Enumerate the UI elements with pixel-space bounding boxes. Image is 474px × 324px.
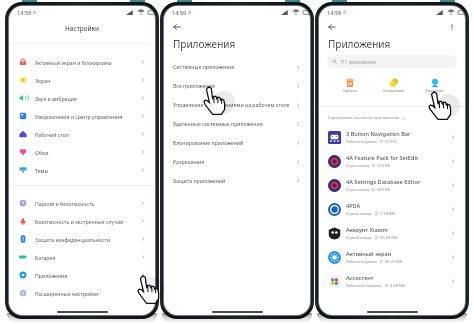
staticText: Активный экран и блокировка: [35, 59, 112, 66]
button[interactable]: 111 приложения: [327, 55, 457, 68]
staticText: Защита приложений: [173, 177, 226, 184]
staticText: Разрешения: [173, 158, 205, 165]
staticText: 3 дня назад: [346, 187, 369, 192]
button[interactable]: Разрешения: [416, 78, 453, 93]
button[interactable]: Управление приложениями на рабочем столе: [164, 95, 310, 114]
button[interactable]: Удаленные системные приложения: [164, 114, 310, 133]
staticText: Обои: [35, 149, 49, 156]
button[interactable]: 3 Button Navigation Bar: [319, 125, 465, 149]
staticText: Звук и вибрация: [35, 95, 77, 102]
button[interactable]: Безопасность и экстренные случаи: [9, 212, 155, 230]
staticText: Клонирование приложений: [173, 139, 244, 146]
staticText: Клонирование: [372, 89, 416, 93]
staticText: 55,00 МБ: [380, 235, 398, 240]
staticText: Темы: [35, 167, 49, 174]
staticText: Активный экран: [346, 250, 392, 258]
staticText: Защита конфиденциальности: [35, 236, 111, 243]
button[interactable]: Батарея: [9, 248, 155, 266]
staticText: Все приложения: [173, 82, 215, 89]
staticText: 111 приложения: [340, 59, 376, 65]
staticText: Работало давно: [346, 259, 377, 264]
staticText: Батарея: [35, 254, 56, 261]
staticText: 5 дней назад: [346, 235, 372, 240]
button[interactable]: Все приложения: [164, 76, 310, 95]
staticText: 4PDA: [346, 202, 361, 210]
staticText: 3 дня назад: [346, 163, 369, 168]
staticText: 14:59: [17, 9, 32, 17]
button[interactable]: Приложения: [9, 266, 155, 284]
staticText: 374 КБ: [377, 163, 390, 168]
staticText: 14:59: [327, 9, 342, 17]
staticText: Управление приложениями на рабочем столе: [173, 101, 290, 108]
button[interactable]: 4PDA: [319, 197, 465, 221]
staticText: Уведомления и Центр управления: [35, 113, 123, 120]
staticText: 4.38 МБ: [390, 283, 406, 288]
button[interactable]: Удаление: [328, 78, 372, 93]
button[interactable]: Обои: [9, 143, 155, 161]
button[interactable]: Расширенные настройки: [9, 284, 155, 302]
button[interactable]: Клонирование приложений: [164, 133, 310, 152]
staticText: Удаленные системные приложения: [173, 120, 263, 127]
button[interactable]: Клонирование: [372, 78, 416, 93]
staticText: 5 дней назад: [346, 211, 372, 216]
staticText: Удаление: [328, 89, 372, 93]
button[interactable]: Системные приложения: [164, 57, 310, 76]
button[interactable]: More options: [448, 23, 456, 31]
button[interactable]: Темы: [9, 161, 155, 179]
button[interactable]: 4A Settings Database Editor: [319, 173, 465, 197]
staticText: 3 Button Navigation Bar: [346, 130, 411, 138]
staticText: Безопасность и экстренные случаи: [35, 218, 124, 225]
button[interactable]: Защита приложений: [164, 171, 310, 190]
button[interactable]: Активный экран: [319, 245, 465, 269]
button[interactable]: Аккаунт Xiaomi: [319, 221, 465, 245]
button[interactable]: Ассистент: [319, 269, 465, 293]
button[interactable]: Уведомления и Центр управления: [9, 107, 155, 125]
button[interactable]: 4A Feature Pack for SetEdit: [319, 149, 465, 173]
button[interactable]: Рабочий стол: [9, 125, 155, 143]
staticText: Настройки: [65, 24, 100, 33]
staticText: 7.78 МБ: [380, 211, 396, 216]
staticText: Приложения: [35, 272, 68, 279]
staticText: 14:59: [172, 9, 187, 17]
staticText: Пароли и безопасность: [35, 200, 95, 207]
staticText: 4A Settings Database Editor: [346, 178, 421, 186]
staticText: Работало недавно: [346, 283, 382, 288]
button[interactable]: Звук и вибрация: [9, 89, 155, 107]
staticText: Экран: [35, 77, 51, 84]
button[interactable]: Back: [173, 23, 181, 31]
staticText: Рабочий стол: [35, 131, 69, 138]
staticText: 45.21 МБ: [385, 259, 403, 264]
staticText: Приложения: [328, 37, 391, 51]
staticText: Работало давно: [346, 139, 377, 144]
staticText: Приложения: [173, 37, 236, 51]
staticText: Расширенные настройки: [35, 290, 99, 297]
staticText: Системные приложения: [173, 63, 235, 70]
staticText: 4A Feature Pack for SetEdit: [346, 154, 419, 162]
button[interactable]: Защита конфиденциальности: [9, 230, 155, 248]
staticText: Разрешения: [416, 89, 453, 93]
button[interactable]: Экран: [9, 71, 155, 89]
staticText: Ассистент: [346, 274, 374, 282]
button[interactable]: Активный экран и блокировка: [9, 53, 155, 71]
staticText: 0.00 Б: [385, 139, 397, 144]
staticText: 493 КБ: [377, 187, 390, 192]
button[interactable]: Пароли и безопасность: [9, 194, 155, 212]
staticText: Аккаунт Xiaomi: [346, 226, 388, 234]
button[interactable]: Разрешения: [164, 152, 310, 171]
button[interactable]: Back: [328, 23, 336, 31]
staticText: Сортировка по имени приложения: [328, 115, 400, 121]
